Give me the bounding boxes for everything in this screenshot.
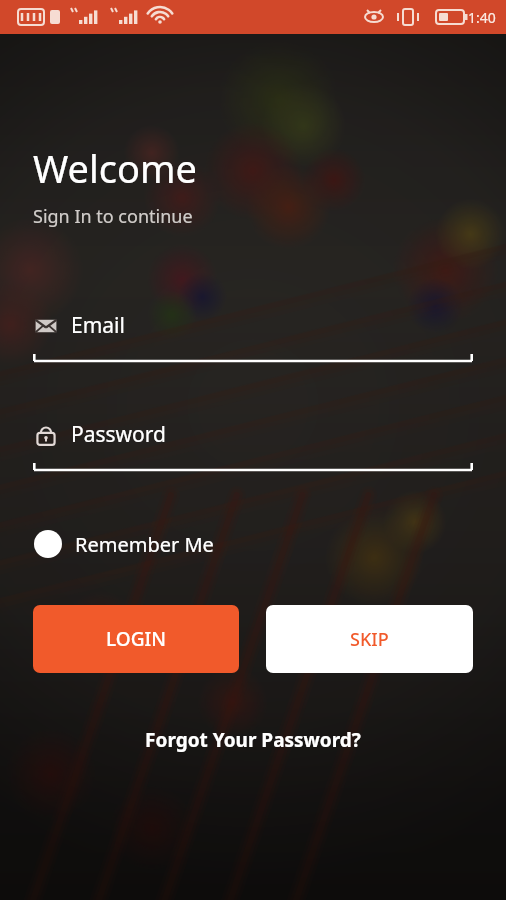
- staticText: Password: [71, 420, 166, 449]
- button[interactable]: Password: [33, 420, 473, 473]
- staticText: 1:40: [468, 8, 496, 27]
- staticText: LOGIN: [106, 626, 166, 652]
- button[interactable]: LOGIN: [33, 605, 239, 673]
- staticText: Welcome: [33, 142, 198, 194]
- staticText: Remember Me: [75, 531, 214, 558]
- staticText: Email: [71, 311, 125, 340]
- button[interactable]: Forgot Your Password?: [131, 721, 375, 759]
- button[interactable]: Email: [33, 311, 473, 364]
- button[interactable]: SKIP: [266, 605, 473, 673]
- button[interactable]: Remember Me: [33, 525, 214, 563]
- staticText: SKIP: [350, 627, 389, 652]
- staticText: Forgot Your Password?: [145, 727, 361, 753]
- staticText: Sign In to continue: [33, 204, 193, 229]
